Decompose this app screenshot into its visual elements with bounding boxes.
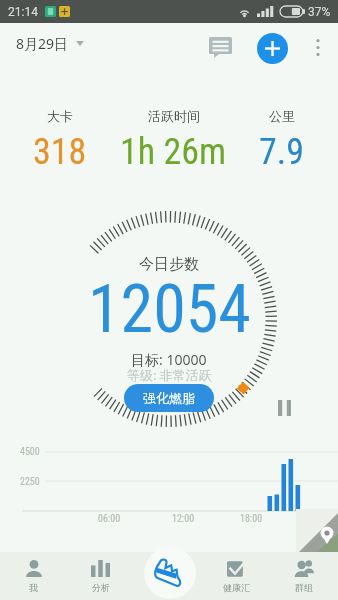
staticText: 我	[29, 582, 38, 593]
staticText: 2250	[20, 476, 40, 488]
staticText: 7.9	[259, 131, 305, 173]
button[interactable]: 分析	[67, 552, 134, 600]
staticText: 12:00	[172, 513, 195, 525]
button[interactable]: 健康汇	[202, 552, 270, 600]
staticText: 今日步数	[139, 255, 199, 274]
staticText: 8月29日	[16, 34, 69, 53]
button[interactable]: Messages	[202, 29, 238, 65]
staticText: 健康汇	[223, 582, 250, 593]
staticText: 4500	[20, 446, 40, 458]
staticText: 分析	[92, 582, 110, 593]
staticText: 强化燃脂	[143, 390, 195, 406]
staticText: 12054	[88, 271, 251, 348]
staticText: 大卡	[47, 108, 73, 124]
staticText: 37%	[308, 5, 331, 19]
button[interactable]: 我	[0, 552, 67, 600]
button[interactable]: 强化燃脂	[124, 384, 214, 412]
button[interactable]: More options	[305, 25, 331, 70]
staticText: 群组	[295, 582, 313, 593]
button[interactable]: 群组	[270, 552, 338, 600]
staticText: 06:00	[98, 513, 121, 525]
button[interactable]: Add	[257, 33, 288, 64]
staticText: 目标: 10000	[131, 350, 207, 369]
staticText: 1h 26m	[120, 131, 227, 173]
staticText: 活跃时间	[148, 108, 200, 124]
staticText: 等级: 非常活跃	[127, 366, 212, 384]
staticText: 318	[33, 131, 87, 173]
button[interactable]: Pause	[278, 400, 298, 420]
staticText: 公里	[269, 108, 295, 124]
button[interactable]: Steps	[144, 547, 196, 599]
button[interactable]: 8月29日	[12, 30, 88, 57]
staticText: 18:00	[240, 513, 263, 525]
staticText: 21:14	[8, 5, 38, 19]
